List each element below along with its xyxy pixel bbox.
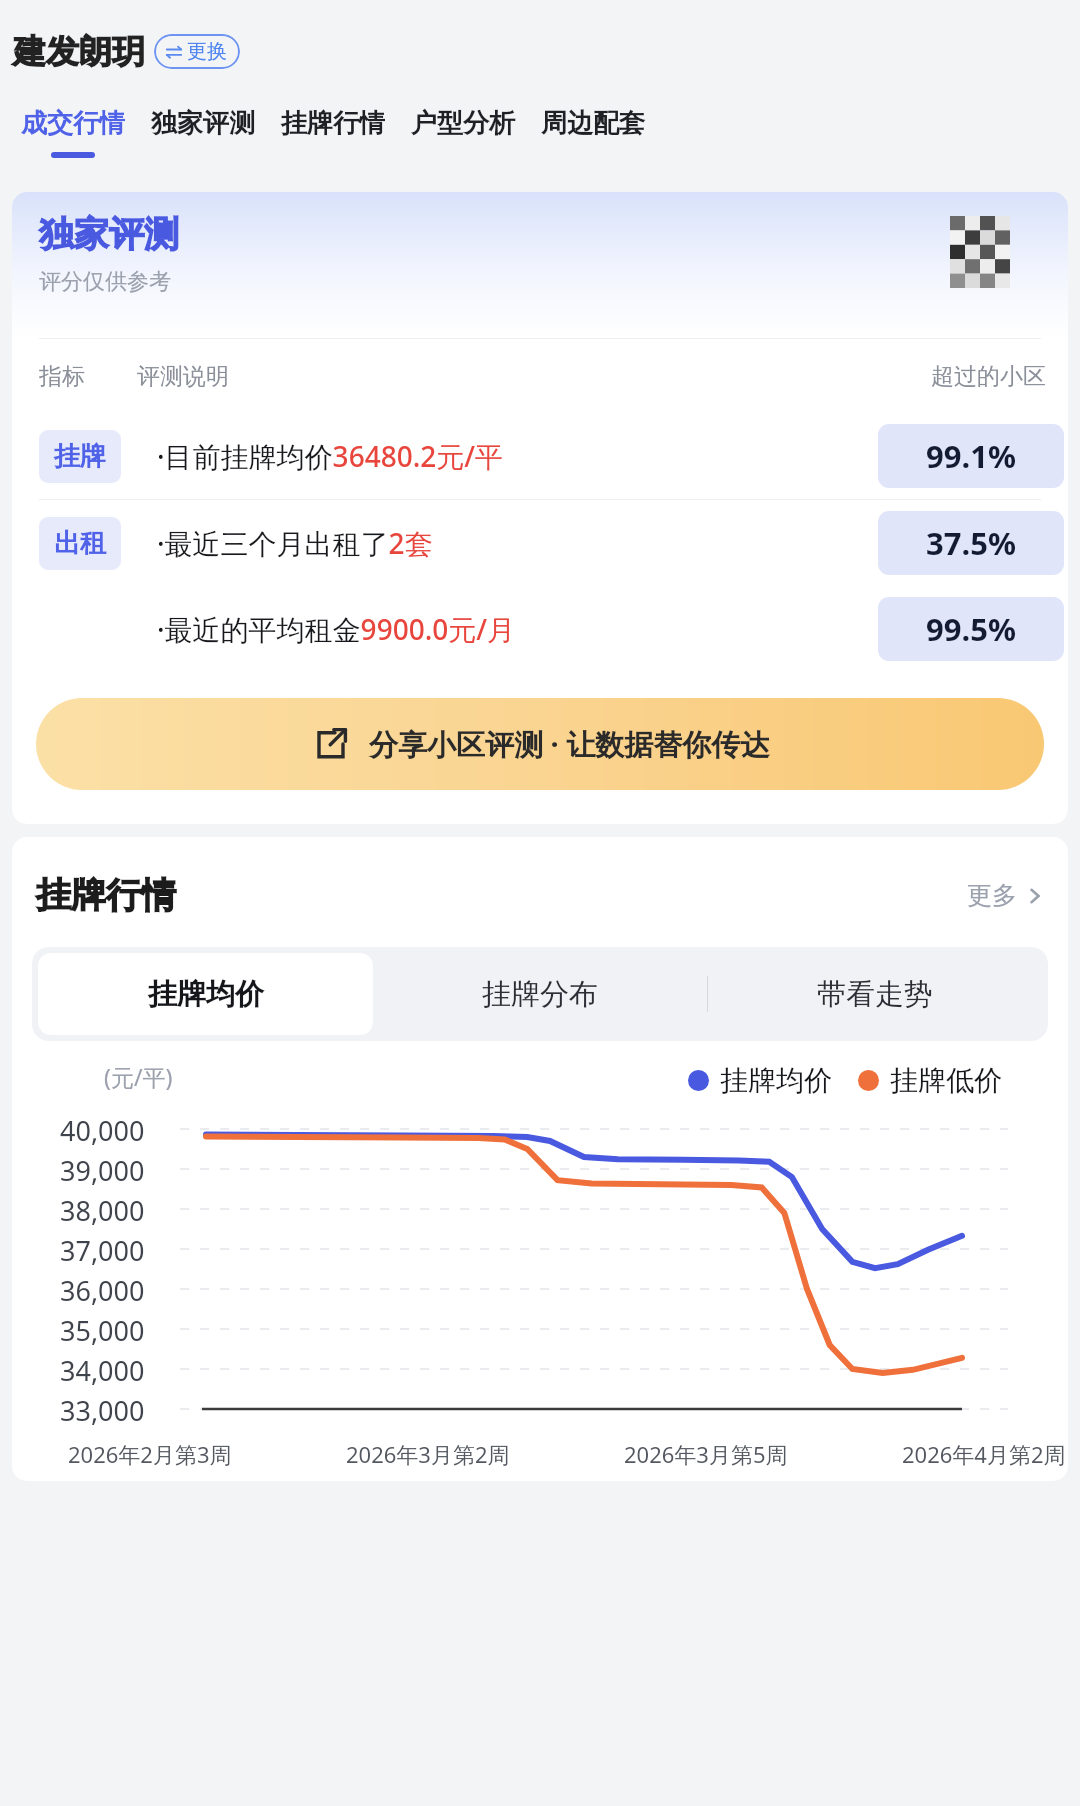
button[interactable]: 挂牌行情 [268,103,398,156]
staticText: (元/平) [104,1061,173,1092]
button[interactable]: 周边配套 [528,103,658,156]
button[interactable]: 户型分析 [398,103,528,156]
staticText: 带看走势 [817,976,933,1013]
staticText: 挂牌低价 [890,1063,1002,1098]
staticText: 35,000 [60,1312,145,1349]
button[interactable]: 挂牌均价 [38,953,373,1035]
other: Share [311,724,351,764]
button[interactable]: 独家评测 [138,103,268,156]
staticText: ·最近的平均租金9900.0元/月 [157,610,516,648]
staticText: 独家评测 [151,107,255,140]
staticText: 挂牌 [54,440,106,473]
button[interactable]: 更多 [967,880,1046,911]
staticText: 2026年3月第2周 [346,1439,510,1469]
staticText: 挂牌行情 [36,873,176,917]
staticText: 36,000 [60,1272,145,1309]
staticText: 周边配套 [541,107,645,140]
staticText: 挂牌均价 [720,1063,832,1098]
staticText: 出租 [54,527,106,560]
staticText: 成交行情 [21,107,125,140]
button[interactable]: 带看走势 [708,953,1042,1035]
staticText: 39,000 [60,1152,145,1189]
staticText: 38,000 [60,1192,145,1229]
staticText: 评测说明 [137,362,229,391]
staticText: 37.5% [926,522,1016,564]
staticText: 40,000 [60,1112,145,1149]
staticText: 33,000 [60,1392,145,1429]
staticText: 34,000 [60,1352,145,1389]
staticText: 分享小区评测 · 让数据替你传达 [369,724,770,764]
staticText: 挂牌行情 [281,107,385,140]
staticText: 更换 [187,39,227,64]
staticText: ·目前挂牌均价36480.2元/平 [157,437,504,475]
staticText: 户型分析 [411,107,515,140]
staticText: 挂牌分布 [482,976,598,1013]
staticText: 2026年3月第5周 [624,1439,788,1469]
staticText: 独家评测 [39,212,179,256]
staticText: 超过的小区 [931,362,1046,391]
staticText: 99.5% [926,608,1016,650]
staticText: ·最近三个月出租了2套 [157,524,433,562]
staticText: 2026年2月第3周 [68,1439,232,1469]
staticText: 更多 [967,880,1017,911]
staticText: 建发朗玥 [13,31,145,73]
button[interactable]: 更换 [154,34,240,69]
staticText: 评分仅供参考 [39,268,171,296]
staticText: 指标 [39,362,85,391]
button[interactable]: Share [36,698,1044,790]
staticText: 99.1% [926,435,1016,477]
button[interactable]: 挂牌分布 [373,953,707,1035]
staticText: 挂牌均价 [148,976,264,1013]
staticText: 2026年4月第2周 [902,1439,1066,1469]
button[interactable]: 成交行情 [8,103,138,162]
staticText: 37,000 [60,1232,145,1269]
